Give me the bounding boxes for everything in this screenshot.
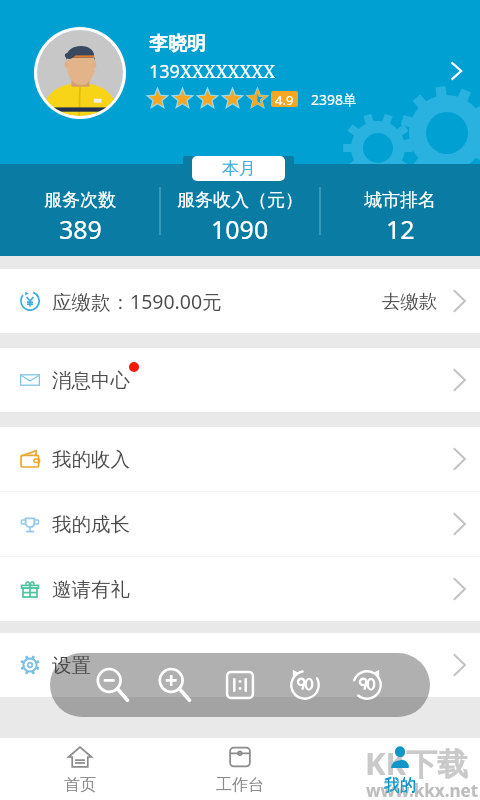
button[interactable]: Actual size <box>217 662 263 708</box>
staticText: 本月 <box>222 158 256 179</box>
button[interactable]: Rotate left <box>282 662 328 708</box>
staticText: 设置 <box>52 653 91 678</box>
button[interactable]: 工作台 <box>160 738 320 800</box>
staticText: 城市排名 <box>364 189 436 212</box>
staticText: 李晓明 <box>149 32 206 56</box>
button[interactable]: 我的成长 <box>0 492 480 556</box>
staticText: 我的 <box>384 775 416 795</box>
button[interactable]: 首页 <box>0 738 160 800</box>
staticText: 389 <box>59 212 102 246</box>
staticText: 我的收入 <box>52 447 130 472</box>
staticText: XXXXXXXX <box>180 59 276 84</box>
button[interactable]: 我的收入 <box>0 427 480 491</box>
staticText: 工作台 <box>216 775 264 795</box>
staticText: 4.9 <box>275 91 294 107</box>
staticText: 去缴款 <box>382 290 438 313</box>
staticText: 消息中心 <box>52 368 130 393</box>
staticText: 应缴款：1590.00元 <box>52 288 222 315</box>
staticText: 服务次数 <box>44 189 116 212</box>
staticText: 12 <box>386 212 415 246</box>
staticText: 2398单 <box>311 90 358 109</box>
staticText: 139 <box>149 59 180 84</box>
button[interactable]: Zoom in <box>152 662 198 708</box>
button[interactable]: 本月 <box>192 156 285 181</box>
button[interactable]: Rotate right <box>344 662 390 708</box>
button[interactable]: 应缴款：1590.00元 <box>0 269 480 333</box>
staticText: 服务收入（元） <box>177 189 303 212</box>
staticText: 我的成长 <box>52 512 130 537</box>
button[interactable]: 邀请有礼 <box>0 557 480 621</box>
button[interactable]: 我的 <box>320 738 480 800</box>
staticText: www.kkx.net <box>366 779 479 800</box>
staticText: 我的 <box>384 776 416 796</box>
button[interactable]: 设置 <box>0 633 480 697</box>
staticText: 首页 <box>64 775 96 795</box>
staticText: 1090 <box>211 212 269 246</box>
button[interactable]: 消息中心 <box>0 348 480 412</box>
button[interactable]: Zoom out <box>90 662 136 708</box>
staticText: KK下载 <box>365 742 469 784</box>
staticText: 邀请有礼 <box>52 577 130 602</box>
